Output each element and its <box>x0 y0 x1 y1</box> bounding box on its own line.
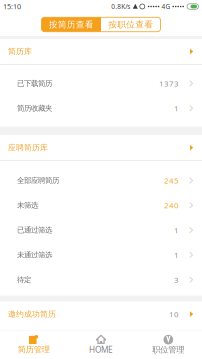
staticText: 已通过筛选 <box>17 225 52 235</box>
button[interactable]: 按职位查看 <box>101 17 160 32</box>
staticText: 邀约成功简历 <box>8 309 56 319</box>
staticText: 简历管理 <box>18 344 50 355</box>
button[interactable]: 简历收藏夹 <box>0 96 202 121</box>
staticText: 1373 <box>159 78 179 89</box>
staticText: 按简历查看 <box>49 19 94 30</box>
button[interactable]: HOME <box>67 330 135 359</box>
staticText: 未通过筛选 <box>17 250 52 260</box>
button[interactable]: 待定 <box>0 267 202 292</box>
staticText: HOME <box>89 344 113 355</box>
staticText: 245 <box>164 175 179 186</box>
staticText: 简历收藏夹 <box>17 103 52 113</box>
staticText: 简历库 <box>8 46 32 56</box>
button[interactable]: 应聘简历库 <box>0 135 202 160</box>
button[interactable]: 简历库 <box>0 39 202 64</box>
staticText: 1 <box>174 249 179 260</box>
button[interactable]: 已通过筛选 <box>0 218 202 242</box>
button[interactable]: 按简历查看 <box>41 17 101 32</box>
staticText: 10 <box>169 309 179 319</box>
staticText: 4G <box>161 2 170 11</box>
staticText: 待定 <box>17 275 31 284</box>
staticText: 0.8K/s <box>111 2 130 11</box>
button[interactable]: 职位管理 <box>135 330 202 359</box>
button[interactable]: 已下载简历 <box>0 71 202 96</box>
button[interactable]: 简历管理 <box>0 330 67 359</box>
button[interactable]: 全部应聘简历 <box>0 168 202 193</box>
staticText: 1 <box>174 103 179 113</box>
staticText: 按职位查看 <box>108 19 153 30</box>
staticText: 应聘简历库 <box>8 143 48 152</box>
button[interactable]: 邀约成功简历 <box>0 302 202 327</box>
staticText: 3 <box>174 274 179 285</box>
staticText: 全部应聘简历 <box>17 176 59 185</box>
button[interactable]: 未通过筛选 <box>0 242 202 267</box>
staticText: 1 <box>174 225 179 235</box>
staticText: 已下载简历 <box>17 79 52 88</box>
staticText: 15:10 <box>3 2 21 11</box>
staticText: 未筛选 <box>17 201 38 210</box>
staticText: 职位管理 <box>152 344 184 355</box>
staticText: 240 <box>164 200 179 211</box>
button[interactable]: 未筛选 <box>0 193 202 218</box>
